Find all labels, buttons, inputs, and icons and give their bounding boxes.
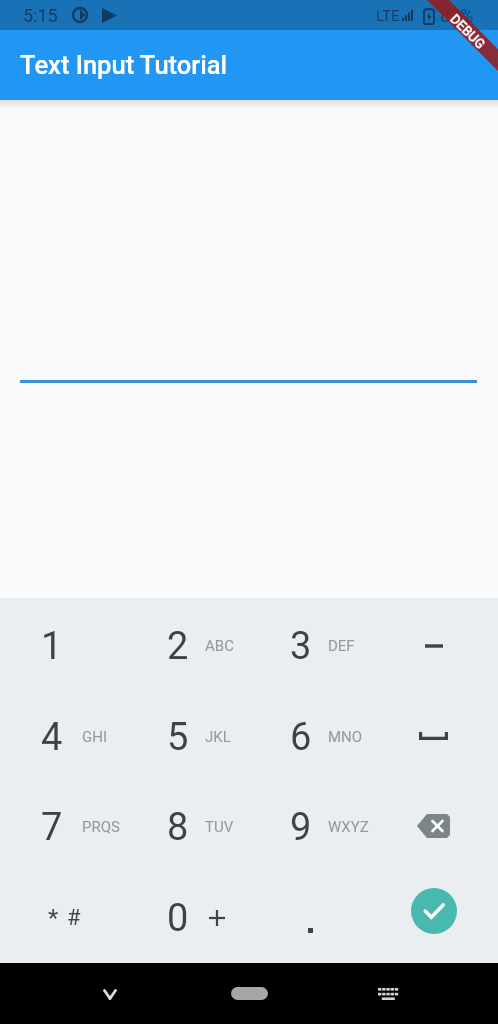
staticText: 2: [167, 624, 189, 669]
button[interactable]: [369, 692, 498, 782]
staticText: 7: [41, 805, 63, 850]
staticText: Text Input Tutorial: [20, 50, 228, 80]
staticText: *: [48, 904, 59, 932]
staticText: #: [67, 905, 81, 931]
button[interactable]: [369, 601, 498, 691]
staticText: TUV: [205, 818, 234, 836]
staticText: 83%: [440, 5, 474, 26]
staticText: ABC: [205, 637, 234, 655]
staticText: 3: [290, 624, 312, 669]
staticText: WXYZ: [328, 818, 369, 836]
other: Backspace: [417, 814, 450, 838]
staticText: LTE: [376, 7, 400, 25]
button[interactable]: [0, 601, 123, 691]
button[interactable]: [246, 692, 369, 782]
button[interactable]: [123, 692, 246, 782]
button[interactable]: Hide keyboard: [88, 972, 132, 1016]
staticText: 0: [167, 896, 189, 941]
button[interactable]: [123, 782, 246, 872]
staticText: 4: [41, 715, 63, 760]
button[interactable]: Switch keyboard: [366, 972, 410, 1016]
staticText: 9: [290, 805, 312, 850]
button[interactable]: Home: [219, 979, 279, 1009]
button[interactable]: [246, 873, 369, 963]
button[interactable]: [123, 601, 246, 691]
button[interactable]: [369, 782, 498, 872]
button[interactable]: [0, 692, 123, 782]
staticText: 8: [167, 805, 189, 850]
button[interactable]: [123, 873, 246, 963]
button[interactable]: [246, 601, 369, 691]
other: Space: [419, 732, 448, 740]
button[interactable]: [0, 873, 123, 963]
staticText: DEF: [328, 637, 355, 655]
button[interactable]: [369, 873, 498, 963]
staticText: 5:15: [23, 5, 58, 26]
staticText: 1: [41, 624, 63, 669]
button[interactable]: [246, 782, 369, 872]
other: Submit: [411, 888, 457, 934]
staticText: GHI: [82, 728, 107, 746]
staticText: 5: [167, 715, 189, 760]
other: Minus: [425, 644, 443, 648]
staticText: JKL: [205, 728, 231, 746]
button[interactable]: [0, 782, 123, 872]
staticText: MNO: [328, 728, 363, 746]
staticText: 6: [290, 715, 312, 760]
staticText: DEBUG: [447, 11, 488, 52]
staticText: PRQS: [82, 818, 120, 836]
